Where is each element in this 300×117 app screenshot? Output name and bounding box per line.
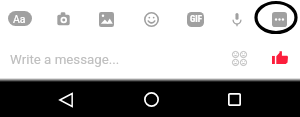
button[interactable]: Recent apps bbox=[228, 93, 241, 106]
button[interactable]: Like bbox=[272, 51, 288, 64]
button[interactable]: More options bbox=[272, 12, 287, 27]
staticText: Write a message... bbox=[10, 52, 120, 68]
button[interactable]: Gallery bbox=[99, 12, 114, 27]
staticText: Aa bbox=[13, 13, 26, 25]
staticText: GIF bbox=[190, 14, 202, 25]
button[interactable]: GIF bbox=[187, 12, 204, 27]
button[interactable]: Emoji bbox=[144, 12, 159, 27]
button[interactable]: Stickers bbox=[232, 51, 247, 66]
button[interactable]: Aa bbox=[8, 11, 32, 26]
button[interactable]: Back bbox=[59, 93, 73, 107]
button[interactable]: Camera bbox=[57, 12, 70, 26]
button[interactable]: Home bbox=[144, 92, 159, 107]
button[interactable]: Voice message bbox=[230, 12, 244, 27]
